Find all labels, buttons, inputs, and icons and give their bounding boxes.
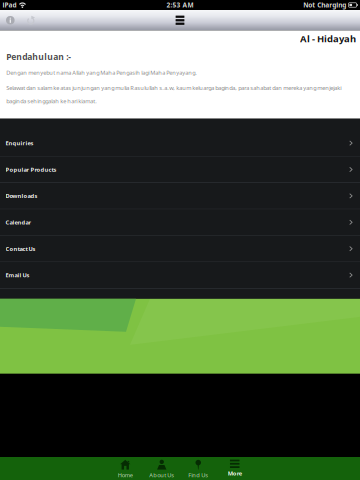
button[interactable]: Find Us (181, 457, 215, 480)
button[interactable]: Calendar (0, 209, 360, 236)
staticText: Not Charging (303, 1, 346, 9)
button[interactable]: Contact Us (0, 236, 360, 262)
staticText: iPad (2, 1, 16, 9)
button[interactable]: About Us (145, 457, 179, 480)
staticText: Find Us (188, 471, 208, 479)
staticText: Al - Hidayah (300, 32, 356, 45)
button[interactable]: Home (108, 457, 142, 480)
staticText: Dengan menyebut nama Allah yang Maha Pen… (6, 69, 197, 76)
staticText: baginda sehinggalah ke hari kiamat. (6, 97, 97, 105)
button[interactable]: Email Us (0, 262, 360, 289)
button[interactable]: Downloads (0, 183, 360, 209)
staticText: About Us (149, 471, 174, 479)
staticText: Contact Us (6, 245, 36, 253)
staticText: Enquiries (6, 139, 34, 147)
staticText: 2:53 AM (166, 1, 193, 9)
staticText: Selawat dan salam ke atas junjungan yang… (6, 84, 341, 91)
button[interactable]: Refresh (21, 10, 41, 30)
button[interactable]: More (218, 457, 252, 480)
staticText: Calendar (6, 218, 32, 226)
staticText: Downloads (6, 192, 38, 200)
staticText: More (228, 469, 242, 477)
button[interactable]: Popular Products (0, 157, 360, 183)
button[interactable]: Info (0, 10, 20, 30)
button[interactable]: Menu (168, 10, 192, 30)
staticText: Popular Products (6, 166, 57, 173)
button[interactable]: Enquiries (0, 130, 360, 157)
staticText: Home (118, 471, 133, 479)
staticText: Email Us (6, 271, 30, 279)
staticText: Pendahuluan :- (6, 51, 71, 62)
